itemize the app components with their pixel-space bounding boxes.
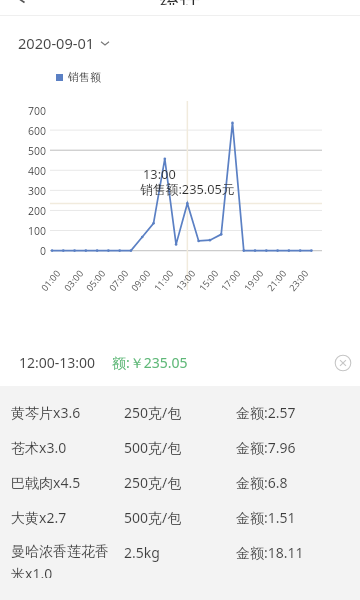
staticText: 03:00 [61, 267, 86, 293]
staticText: 500 [16, 144, 46, 158]
staticText: 大黄x2.7 [11, 508, 67, 527]
button[interactable]: 巴戟肉x4.5 [0, 473, 360, 508]
staticText: 15:00 [196, 267, 221, 293]
staticText: 销售额:235.05元 [140, 180, 235, 197]
staticText: 13:00 [173, 267, 198, 293]
button[interactable]: Back [10, 0, 32, 4]
staticText: 250克/包 [124, 403, 182, 422]
staticText: 金额:1.51 [236, 508, 296, 527]
staticText: 23:00 [286, 267, 311, 293]
staticText: 13:00 [143, 165, 176, 182]
staticText: 05:00 [83, 267, 108, 293]
staticText: 额:￥235.05 [112, 353, 188, 372]
button[interactable]: 苍术x3.0 [0, 438, 360, 473]
button[interactable]: 2020-09-01 [18, 33, 110, 53]
staticText: 500克/包 [124, 438, 182, 457]
button[interactable]: 曼哈浓香莲花香米x1.0 [0, 543, 360, 578]
staticText: 400 [16, 164, 46, 178]
staticText: 200 [16, 204, 46, 218]
staticText: 2020-09-01 [18, 33, 95, 53]
staticText: 700 [16, 104, 46, 118]
staticText: 0 [16, 244, 46, 258]
staticText: 巴戟肉x4.5 [11, 473, 81, 492]
staticText: 01:00 [38, 267, 63, 293]
staticText: 500克/包 [124, 508, 182, 527]
staticText: 金额:2.57 [236, 403, 296, 422]
staticText: 2.5kg [124, 543, 160, 562]
staticText: 21:00 [264, 267, 289, 293]
staticText: 100 [16, 224, 46, 238]
button[interactable]: Close [334, 354, 352, 372]
staticText: 统计 [160, 0, 200, 5]
staticText: 12:00-13:00 [19, 353, 96, 372]
staticText: 金额:18.11 [236, 543, 304, 562]
staticText: 销售额 [68, 70, 101, 84]
staticText: 金额:6.8 [236, 473, 288, 492]
staticText: 250克/包 [124, 473, 182, 492]
staticText: 金额:7.96 [236, 438, 296, 457]
staticText: 07:00 [106, 267, 131, 293]
button[interactable]: 大黄x2.7 [0, 508, 360, 543]
button[interactable]: 12:00-13:00 [0, 339, 360, 386]
staticText: 黄芩片x3.6 [11, 403, 81, 422]
staticText: 17:00 [218, 267, 243, 293]
staticText: 09:00 [128, 267, 153, 293]
staticText: 300 [16, 184, 46, 198]
staticText: 11:00 [151, 267, 176, 293]
staticText: 苍术x3.0 [11, 438, 67, 457]
button[interactable]: 黄芩片x3.6 [0, 403, 360, 438]
staticText: 600 [16, 124, 46, 138]
staticText: 曼哈浓香莲花香米x1.0 [11, 543, 112, 578]
staticText: 19:00 [241, 267, 266, 293]
